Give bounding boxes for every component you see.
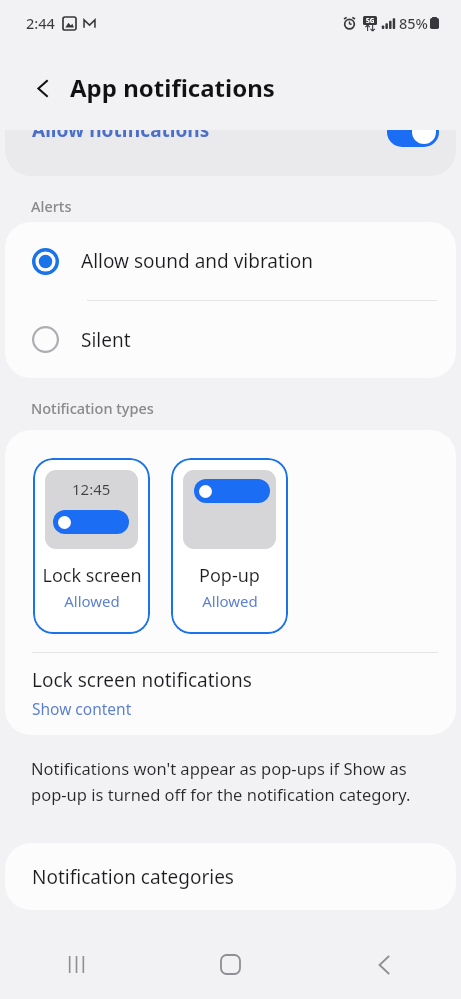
staticText: Silent xyxy=(81,327,131,353)
button[interactable]: Allow sound and vibration xyxy=(5,222,456,300)
staticText: Lock screen xyxy=(42,563,142,588)
button[interactable]: Allow notifications xyxy=(5,130,456,176)
staticText: Notifications won't appear as pop-ups if… xyxy=(31,757,433,806)
button[interactable]: Back xyxy=(22,67,64,109)
button[interactable]: Back xyxy=(307,930,461,999)
button[interactable]: 12:45 xyxy=(33,458,150,634)
staticText: Allow sound and vibration xyxy=(81,248,314,274)
staticText: App notifications xyxy=(70,71,275,104)
staticText: 2:44 xyxy=(26,13,55,33)
button[interactable]: Notification categories xyxy=(5,843,456,910)
button[interactable]: Pop-up xyxy=(171,458,288,634)
staticText: Notification categories xyxy=(32,864,234,890)
button[interactable]: Silent xyxy=(5,301,456,378)
staticText: Show content xyxy=(32,698,132,719)
staticText: 12:45 xyxy=(72,479,111,499)
button[interactable]: Recents xyxy=(0,930,153,999)
staticText: 5G xyxy=(366,16,375,25)
staticText: Allowed xyxy=(202,591,258,611)
button[interactable]: Home xyxy=(153,930,307,999)
staticText: Notification types xyxy=(31,398,154,418)
staticText: Allow notifications xyxy=(32,130,210,143)
staticText: Pop-up xyxy=(199,563,260,588)
staticText: Allowed xyxy=(64,591,120,611)
staticText: 85% xyxy=(399,13,428,33)
staticText: Alerts xyxy=(31,196,72,216)
button[interactable]: Lock screen notifications xyxy=(32,667,252,719)
staticText: Lock screen notifications xyxy=(32,667,252,693)
